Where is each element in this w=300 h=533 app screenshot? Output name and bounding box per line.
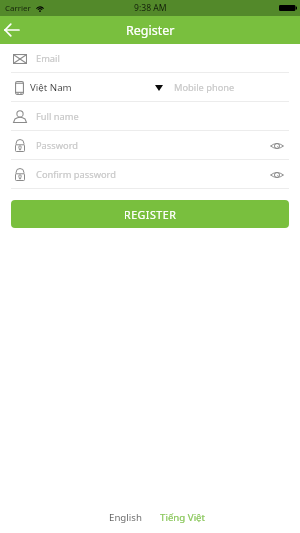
button[interactable]: Back: [0, 16, 24, 44]
staticText: Việt Nam: [30, 81, 72, 94]
button[interactable]: Show password: [267, 136, 287, 156]
button[interactable]: Confirm password: [0, 160, 300, 189]
button[interactable]: Full name: [0, 102, 300, 131]
button[interactable]: Password: [0, 131, 300, 160]
staticText: Full name: [36, 110, 79, 123]
button[interactable]: Show password: [267, 165, 287, 185]
button[interactable]: REGISTER: [11, 200, 289, 228]
staticText: Confirm password: [36, 168, 116, 181]
staticText: REGISTER: [124, 208, 177, 223]
staticText: Carrier: [5, 3, 31, 14]
button[interactable]: Email: [0, 44, 300, 73]
staticText: 9:38 AM: [134, 2, 167, 14]
button[interactable]: English: [100, 509, 151, 526]
staticText: Password: [36, 139, 79, 152]
staticText: English: [109, 511, 142, 524]
button[interactable]: Tiếng Việt: [151, 509, 215, 526]
button[interactable]: Việt Nam: [0, 73, 300, 102]
staticText: Mobile phone: [174, 81, 235, 94]
staticText: Register: [126, 22, 175, 39]
staticText: Tiếng Việt: [160, 511, 206, 524]
button[interactable]: Select country: [149, 78, 169, 98]
staticText: Email: [36, 52, 60, 65]
